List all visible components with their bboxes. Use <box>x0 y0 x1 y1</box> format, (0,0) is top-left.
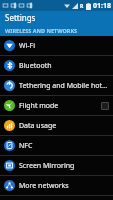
staticText: Tethering and Mobile hotsp.. <box>19 81 109 91</box>
button[interactable]: NFC <box>0 136 113 155</box>
button[interactable]: Wi-Fi <box>0 36 113 55</box>
staticText: Settings <box>5 12 36 23</box>
staticText: WIRELESS AND NETWORKS <box>5 27 78 34</box>
staticText: Bluetooth <box>19 61 109 71</box>
staticText: Flight mode <box>19 101 101 111</box>
button[interactable]: More networks <box>0 176 113 195</box>
staticText: Wi-Fi <box>19 41 109 51</box>
button[interactable]: Flight mode <box>0 96 113 115</box>
button[interactable]: Bluetooth <box>0 56 113 75</box>
button[interactable]: Data usage <box>0 116 113 135</box>
staticText: Data usage <box>19 121 109 131</box>
button[interactable]: Screen Mirroring <box>0 156 113 175</box>
staticText: R <box>80 3 84 10</box>
staticText: More networks <box>19 181 109 191</box>
button[interactable]: Flight mode toggle <box>101 102 109 110</box>
button[interactable]: Settings <box>0 11 113 24</box>
button[interactable]: Tethering and Mobile hotsp.. <box>0 76 113 95</box>
staticText: NFC <box>19 141 109 151</box>
staticText: Screen Mirroring <box>19 161 109 171</box>
staticText: 01:18 <box>93 1 111 11</box>
